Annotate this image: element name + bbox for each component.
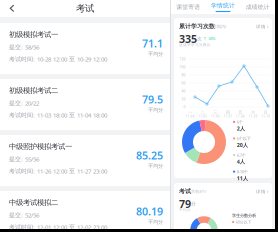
staticText: 达成学学习次数比 xyxy=(179,42,211,47)
staticText: 考试时间: 10-28 12:00 至 10-29 12:00 xyxy=(9,55,107,63)
staticText: 四 xyxy=(226,110,230,115)
staticText: 课堂寄语 xyxy=(176,3,200,11)
staticText: 60分以下 xyxy=(236,219,252,225)
staticText: 考试时间: 12-01 12:00 至 12-02 23:00 xyxy=(9,223,107,231)
staticText: 平均分 xyxy=(148,218,163,225)
staticText: 考试时间: 11-03 18:00 至 11-04 18:00 xyxy=(9,111,107,119)
staticText: 11-06 xyxy=(211,115,220,118)
staticText: 120 xyxy=(179,57,185,61)
staticText: 平均分 xyxy=(179,207,191,212)
staticText: 6个 xyxy=(237,119,243,125)
staticText: 二 xyxy=(201,110,205,115)
staticText: 初级模拟考试二 xyxy=(9,86,58,95)
button[interactable]: 详情 › xyxy=(256,23,268,30)
staticText: 2人 xyxy=(237,125,245,132)
staticText: 335 xyxy=(179,31,197,46)
staticText: 11-09 xyxy=(249,115,258,118)
staticText: 11-07 xyxy=(223,115,232,118)
staticText: 60 xyxy=(181,81,185,85)
staticText: 学生分数分析 xyxy=(232,213,256,218)
staticText: (本学期内) xyxy=(208,23,226,29)
staticText: 考试 xyxy=(76,3,94,14)
button[interactable]: 课堂寄语 xyxy=(171,0,206,14)
staticText: 80 xyxy=(181,73,185,77)
staticText: 6个以下 xyxy=(237,136,251,141)
staticText: 11-08 xyxy=(236,115,245,118)
staticText: 79.5 xyxy=(142,92,163,106)
staticText: 85.25 xyxy=(136,148,163,162)
button[interactable]: 初级模拟考试二 xyxy=(0,79,170,130)
button[interactable]: 中级考试模拟二 xyxy=(0,191,170,232)
staticText: 次 xyxy=(197,36,202,42)
staticText: 100 xyxy=(179,65,185,69)
button[interactable]: 中级照护模拟考试一 xyxy=(0,135,170,186)
staticText: 40 xyxy=(181,89,185,93)
button[interactable]: 详情 › xyxy=(256,188,268,195)
staticText: 考试 xyxy=(179,187,191,195)
staticText: 平均分 xyxy=(148,162,163,169)
staticText: 五 xyxy=(239,110,243,115)
staticText: 提交: 20/22 xyxy=(9,99,39,107)
staticText: 提交: 58/56 xyxy=(9,43,39,51)
staticText: 20 xyxy=(181,97,185,101)
staticText: 20人 xyxy=(237,141,248,149)
staticText: 80.19 xyxy=(136,204,163,218)
staticText: 详情 › xyxy=(256,188,268,195)
staticText: 一 xyxy=(188,110,192,115)
staticText: 提交: 55/56 xyxy=(9,155,39,163)
staticText: 初级模拟考试一 xyxy=(9,30,58,39)
staticText: 日 xyxy=(264,110,268,115)
staticText: (共有4个) xyxy=(190,188,206,194)
staticText: 考试时间: 11-26 12:00 至 11-27 23:00 xyxy=(9,167,107,175)
staticText: 分 xyxy=(191,201,196,207)
staticText: 4人 xyxy=(237,158,245,165)
staticText: 8-10个 xyxy=(237,169,248,174)
button[interactable]: 学情统计 xyxy=(206,0,240,14)
staticText: 6-7个 xyxy=(237,152,246,158)
staticText: 71.1 xyxy=(142,36,163,50)
staticText: 提交: 52/56 xyxy=(9,211,39,219)
staticText: 11-10 xyxy=(261,115,270,118)
staticText: 79 xyxy=(179,196,191,211)
staticText: ↑ 34% xyxy=(203,35,216,41)
button[interactable]: 成绩统计 xyxy=(240,0,275,14)
staticText: 学情统计 xyxy=(211,2,235,9)
staticText: 六 xyxy=(251,110,255,115)
staticText: 成绩统计 xyxy=(246,3,270,11)
staticText: 11-05 xyxy=(198,115,207,118)
staticText: 中级考试模拟二 xyxy=(9,198,58,207)
staticText: 累计学习次数 xyxy=(179,22,215,30)
button[interactable]: 初级模拟考试一 xyxy=(0,23,170,74)
staticText: 11人 xyxy=(237,174,248,182)
button[interactable]: 返回 xyxy=(5,1,19,15)
staticText: 三 xyxy=(213,110,217,115)
staticText: 11-04 xyxy=(186,115,195,118)
staticText: 0 xyxy=(183,105,185,109)
staticText: 平均分 xyxy=(148,50,163,57)
staticText: 中级照护模拟考试一 xyxy=(9,142,72,151)
staticText: 详情 › xyxy=(256,23,268,30)
staticText: 平均分 xyxy=(148,106,163,113)
